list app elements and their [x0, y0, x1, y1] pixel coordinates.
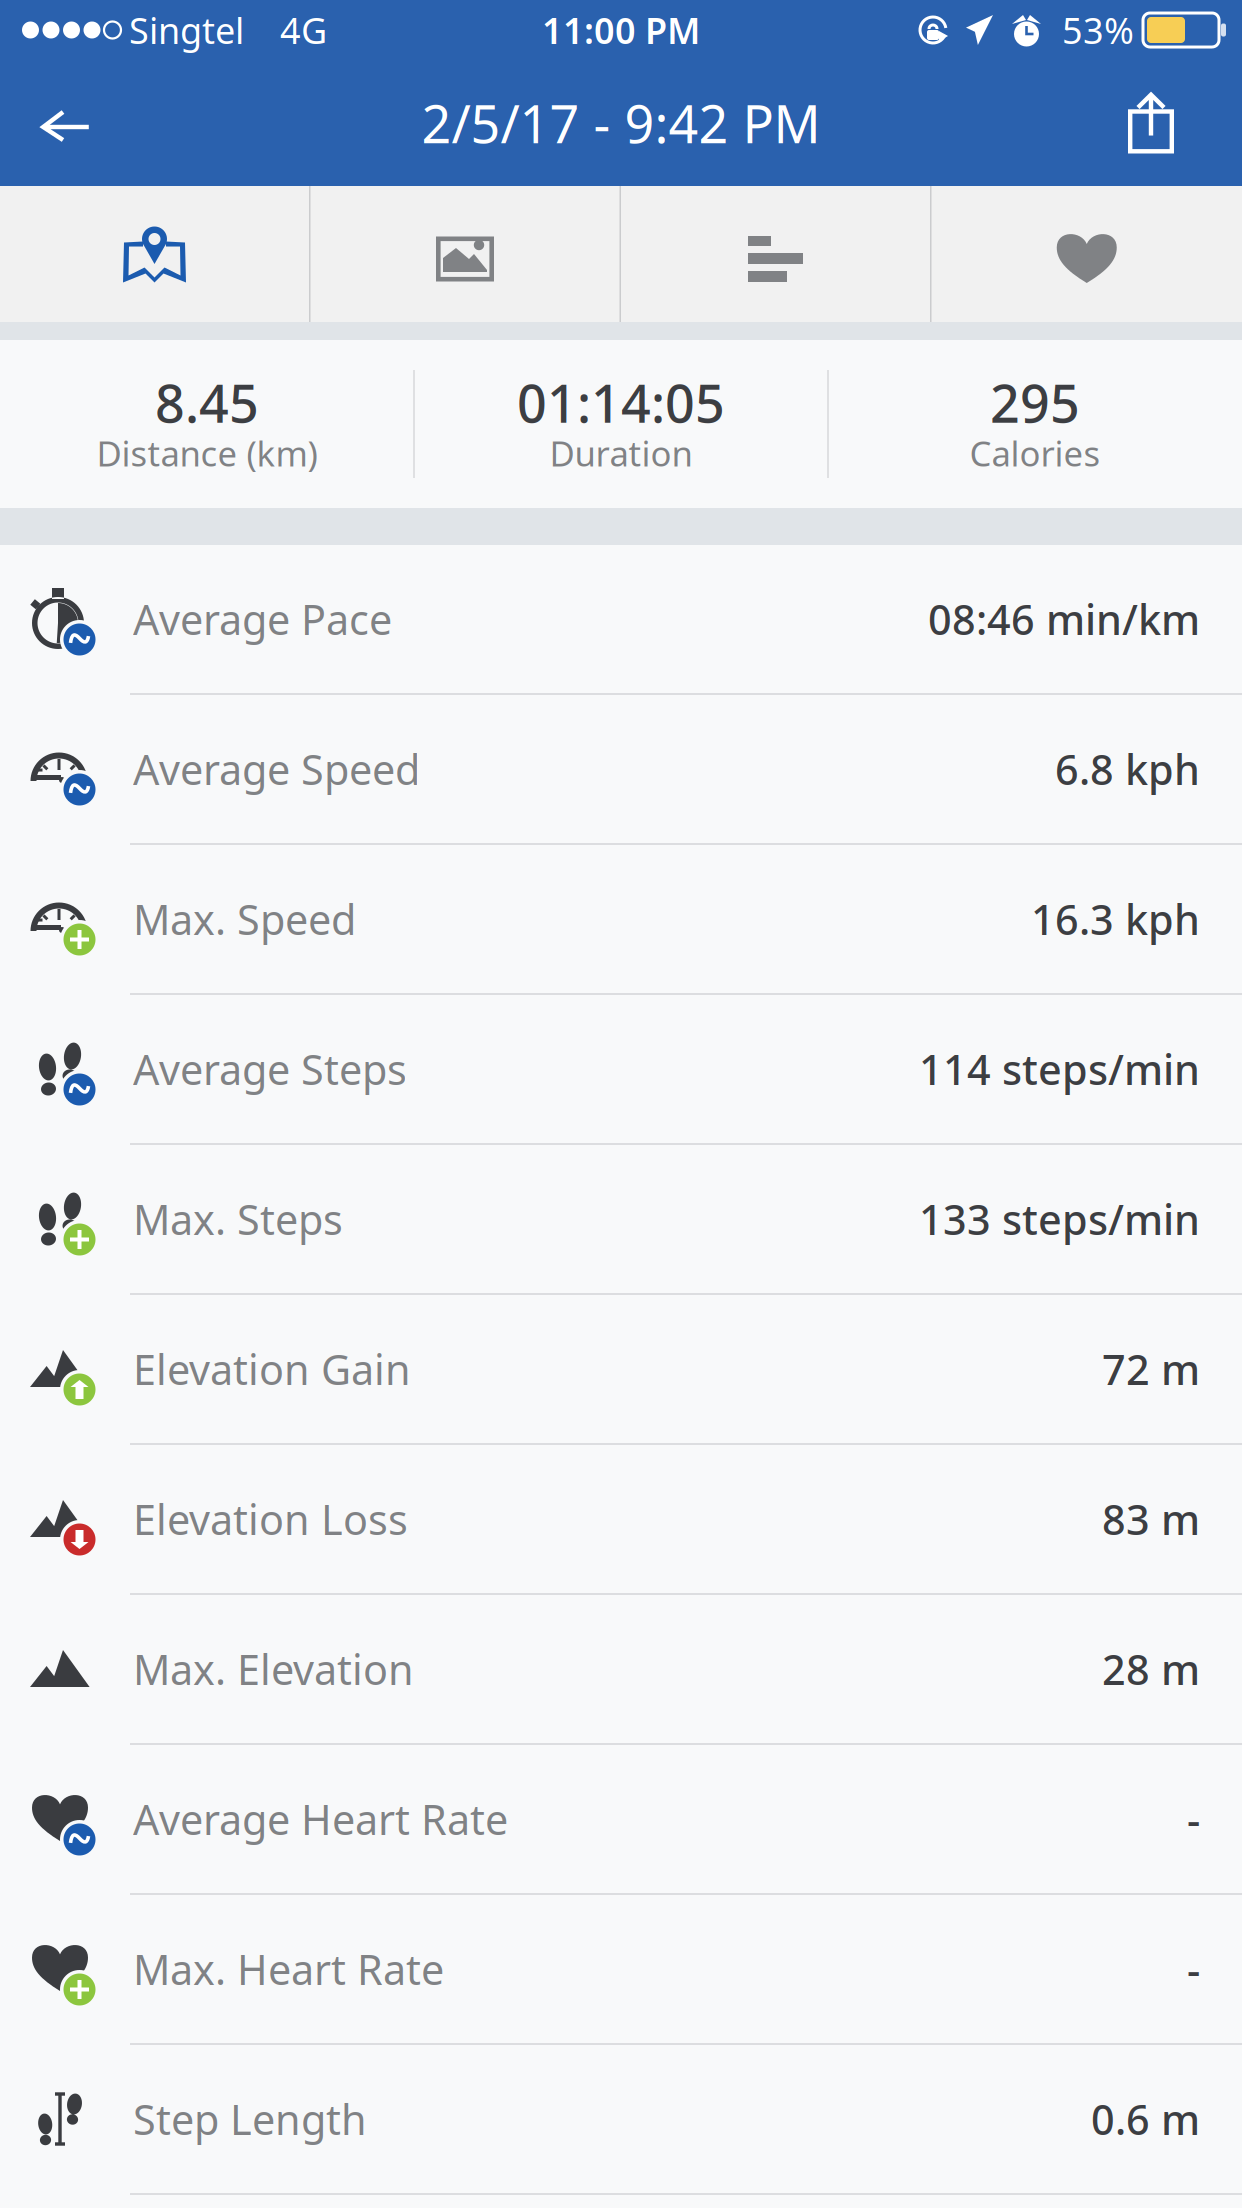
staticText: Distance (km): [96, 430, 317, 476]
button[interactable]: Average Speed: [0, 695, 1242, 845]
staticText: 6.8 kph: [1055, 742, 1200, 796]
staticText: 0.6 m: [1091, 2092, 1200, 2146]
button[interactable]: Step Length: [0, 2045, 1242, 2195]
button[interactable]: Heart rate: [931, 186, 1242, 322]
staticText: Average Steps: [133, 1042, 407, 1096]
staticText: Max. Heart Rate: [133, 1942, 444, 1996]
button[interactable]: Map: [0, 186, 309, 322]
staticText: -: [1187, 1942, 1200, 1996]
staticText: 295: [990, 368, 1080, 437]
staticText: Max. Steps: [133, 1192, 343, 1246]
staticText: 114 steps/min: [919, 1042, 1200, 1096]
staticText: 72 m: [1102, 1342, 1200, 1396]
staticText: 53%: [1062, 6, 1134, 54]
staticText: 83 m: [1102, 1492, 1200, 1546]
button[interactable]: Splits: [621, 186, 930, 322]
button[interactable]: Photos: [310, 186, 619, 322]
button[interactable]: Elevation Gain: [0, 1295, 1242, 1445]
staticText: Elevation Loss: [133, 1492, 408, 1546]
staticText: Elevation Gain: [133, 1342, 411, 1396]
button[interactable]: Elevation Loss: [0, 1445, 1242, 1595]
staticText: 28 m: [1102, 1642, 1200, 1696]
button[interactable]: Average Heart Rate: [0, 1745, 1242, 1895]
staticText: Average Speed: [133, 742, 420, 796]
staticText: 01:14:05: [517, 368, 725, 437]
staticText: Average Heart Rate: [133, 1792, 508, 1846]
staticText: Duration: [549, 430, 692, 476]
staticText: 11:00 PM: [542, 6, 700, 54]
staticText: 8.45: [155, 368, 259, 437]
staticText: 2/5/17 - 9:42 PM: [421, 88, 820, 158]
button[interactable]: Max. Elevation: [0, 1595, 1242, 1745]
button[interactable]: Average Pace: [0, 545, 1242, 695]
button[interactable]: Max. Heart Rate: [0, 1895, 1242, 2045]
button[interactable]: Average Steps: [0, 995, 1242, 1145]
button[interactable]: Share: [1060, 60, 1242, 186]
staticText: 133 steps/min: [919, 1192, 1200, 1246]
button[interactable]: Max. Speed: [0, 845, 1242, 995]
staticText: 16.3 kph: [1031, 892, 1200, 946]
staticText: Average Pace: [133, 592, 392, 646]
staticText: -: [1187, 1792, 1200, 1846]
staticText: Singtel: [129, 6, 244, 54]
staticText: 08:46 min/km: [928, 592, 1200, 646]
staticText: Calories: [969, 430, 1100, 476]
button[interactable]: Max. Steps: [0, 1145, 1242, 1295]
staticText: 4G: [280, 6, 327, 54]
staticText: Step Length: [133, 2092, 367, 2146]
staticText: Max. Speed: [133, 892, 356, 946]
staticText: Max. Elevation: [133, 1642, 414, 1696]
button[interactable]: Back: [0, 60, 132, 186]
